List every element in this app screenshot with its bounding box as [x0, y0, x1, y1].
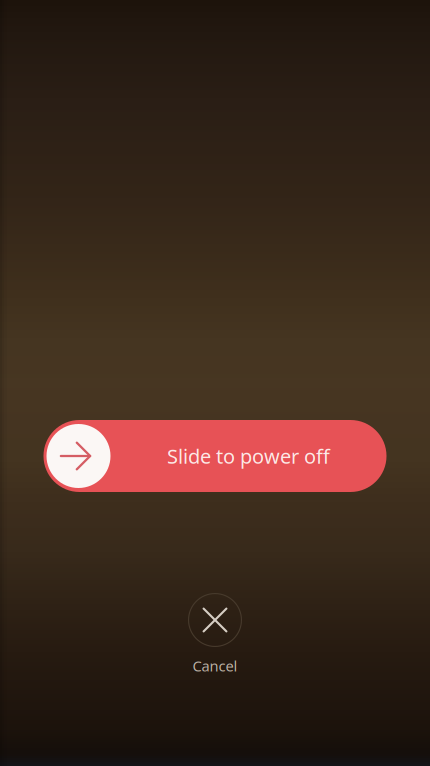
staticText: Slide to power off	[167, 443, 330, 469]
button[interactable]: Cancel	[188, 593, 242, 675]
button[interactable]: Slide to power off	[43, 420, 386, 492]
staticText: Cancel	[192, 656, 237, 675]
